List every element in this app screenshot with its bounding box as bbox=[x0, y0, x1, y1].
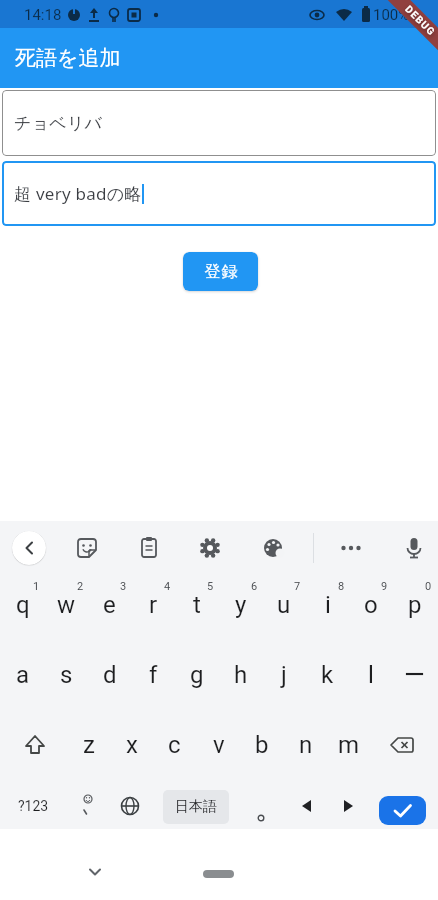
staticText: l bbox=[368, 661, 374, 689]
button[interactable] bbox=[68, 784, 108, 828]
staticText: q bbox=[16, 591, 30, 619]
button[interactable]: o bbox=[349, 583, 392, 627]
button[interactable] bbox=[83, 860, 107, 884]
staticText: t bbox=[193, 591, 201, 619]
staticText: a bbox=[16, 661, 30, 689]
button[interactable]: r bbox=[132, 583, 175, 627]
staticText: 1 bbox=[33, 580, 40, 593]
staticText: h bbox=[234, 661, 248, 689]
button[interactable]: k bbox=[306, 653, 349, 697]
staticText: 8 bbox=[338, 580, 345, 593]
staticText: b bbox=[255, 731, 269, 759]
button[interactable] bbox=[198, 536, 222, 560]
staticText: ?123 bbox=[18, 798, 49, 814]
staticText: w bbox=[57, 591, 76, 619]
button[interactable] bbox=[137, 536, 161, 560]
button[interactable]: c bbox=[153, 723, 196, 767]
button[interactable]: l bbox=[349, 653, 392, 697]
button[interactable] bbox=[339, 536, 363, 560]
staticText: ー bbox=[404, 662, 425, 688]
button[interactable]: h bbox=[219, 653, 262, 697]
staticText: j bbox=[281, 661, 287, 689]
button[interactable]: u bbox=[262, 583, 305, 627]
button[interactable] bbox=[380, 723, 424, 767]
staticText: y bbox=[235, 591, 247, 619]
staticText: d bbox=[103, 661, 117, 689]
button[interactable]: z bbox=[67, 723, 110, 767]
button[interactable]: e bbox=[88, 583, 131, 627]
button[interactable] bbox=[379, 796, 426, 825]
staticText: z bbox=[83, 731, 95, 759]
button[interactable]: a bbox=[1, 653, 44, 697]
staticText: 3 bbox=[120, 580, 127, 593]
button[interactable]: ?123 bbox=[7, 784, 59, 828]
staticText: r bbox=[149, 591, 158, 619]
staticText: o bbox=[364, 591, 378, 619]
staticText: n bbox=[299, 731, 313, 759]
button[interactable]: b bbox=[240, 723, 283, 767]
staticText: 9 bbox=[381, 580, 388, 593]
button[interactable]: j bbox=[262, 653, 305, 697]
staticText: 0 bbox=[425, 580, 432, 593]
button[interactable] bbox=[402, 536, 426, 560]
button[interactable] bbox=[328, 784, 368, 828]
button[interactable] bbox=[261, 536, 285, 560]
button[interactable]: 登録 bbox=[183, 252, 258, 291]
button[interactable]: q bbox=[1, 583, 44, 627]
staticText: 6 bbox=[251, 580, 258, 593]
staticText: チョベリバ bbox=[14, 113, 103, 134]
staticText: 超 very badの略 bbox=[14, 182, 142, 205]
staticText: g bbox=[190, 661, 204, 689]
staticText: c bbox=[168, 731, 181, 759]
staticText: 5 bbox=[207, 580, 214, 593]
button[interactable]: g bbox=[175, 653, 218, 697]
staticText: v bbox=[213, 731, 225, 759]
button[interactable]: d bbox=[88, 653, 131, 697]
staticText: s bbox=[60, 661, 73, 689]
staticText: m bbox=[338, 731, 360, 759]
staticText: k bbox=[321, 661, 334, 689]
button[interactable]: v bbox=[197, 723, 240, 767]
button[interactable]: 日本語 bbox=[163, 790, 229, 824]
staticText: 4 bbox=[164, 580, 171, 593]
button[interactable] bbox=[75, 536, 99, 560]
button[interactable] bbox=[12, 531, 46, 565]
staticText: 7 bbox=[294, 580, 301, 593]
button[interactable]: m bbox=[327, 723, 370, 767]
staticText: f bbox=[149, 661, 158, 689]
staticText: 日本語 bbox=[175, 798, 217, 816]
staticText: 14:18 bbox=[24, 6, 62, 24]
button[interactable] bbox=[110, 784, 150, 828]
button[interactable]: ー bbox=[393, 653, 436, 697]
button[interactable]: チョベリバ bbox=[2, 90, 436, 156]
button[interactable] bbox=[13, 723, 57, 767]
button[interactable]: i bbox=[306, 583, 349, 627]
button[interactable]: y bbox=[219, 583, 262, 627]
staticText: u bbox=[277, 591, 291, 619]
staticText: 100% bbox=[373, 6, 410, 24]
button[interactable] bbox=[287, 784, 327, 828]
button[interactable] bbox=[203, 870, 234, 878]
staticText: 死語を追加 bbox=[15, 45, 121, 71]
staticText: 2 bbox=[77, 580, 84, 593]
button[interactable]: f bbox=[132, 653, 175, 697]
button[interactable]: x bbox=[110, 723, 153, 767]
staticText: i bbox=[325, 591, 331, 619]
staticText: p bbox=[408, 591, 422, 619]
staticText: DEBUG bbox=[402, 3, 438, 39]
button[interactable]: 超 very badの略 bbox=[2, 161, 436, 226]
staticText: e bbox=[103, 591, 116, 619]
button[interactable]: p bbox=[393, 583, 436, 627]
button[interactable]: s bbox=[45, 653, 88, 697]
button[interactable]: w bbox=[45, 583, 88, 627]
button[interactable]: n bbox=[284, 723, 327, 767]
staticText: x bbox=[126, 731, 138, 759]
button[interactable]: t bbox=[175, 583, 218, 627]
staticText: 登録 bbox=[204, 262, 238, 282]
